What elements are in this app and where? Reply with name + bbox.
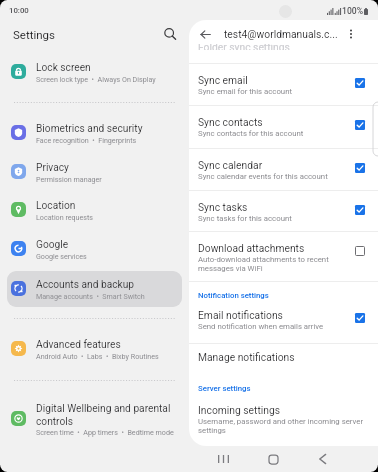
staticText: Advanced features [36, 339, 121, 351]
button[interactable]: Download attachments [189, 239, 378, 277]
button[interactable]: Sync email [189, 71, 378, 101]
button[interactable]: Lock screen [7, 54, 182, 90]
staticText: Server settings [198, 384, 251, 393]
staticText: Sync tasks for this account [198, 214, 292, 223]
button[interactable]: Digital Wellbeing and parental controls [7, 397, 182, 441]
staticText: Settings [13, 28, 55, 41]
button[interactable]: Sync tasks [189, 198, 378, 228]
staticText: Username, password and other incoming se… [198, 417, 368, 435]
staticText: Permission manager [36, 175, 102, 183]
staticText: Face recognition • Fingerprints [36, 136, 137, 144]
staticText: Manage notifications [198, 351, 295, 363]
staticText: Email notifications [198, 309, 283, 321]
staticText: 10:00 [9, 6, 29, 15]
button[interactable]: More options [340, 23, 362, 45]
staticText: Download attachments [198, 242, 305, 254]
staticText: Sync tasks [198, 201, 248, 213]
staticText: Sync email for this account [198, 87, 293, 96]
button[interactable]: Back [195, 24, 215, 44]
button[interactable]: Manage notifications [189, 344, 378, 372]
staticText: Google services [36, 252, 87, 260]
button[interactable]: Search [160, 24, 180, 44]
button[interactable]: Recent apps [210, 446, 236, 472]
button[interactable]: Location [7, 192, 182, 228]
staticText: Google [36, 239, 69, 251]
staticText: Screen lock type • Always On Display [36, 75, 156, 83]
button[interactable]: Advanced features [7, 331, 182, 367]
staticText: Folder sync settings [198, 44, 290, 50]
staticText: Screen time • App timers • Bedtime mode [36, 428, 174, 436]
staticText: 100% [342, 6, 363, 16]
staticText: Biometrics and security [36, 123, 143, 135]
button[interactable]: Accounts and backup [7, 271, 182, 307]
staticText: Manage accounts • Smart Switch [36, 292, 145, 300]
staticText: Accounts and backup [36, 279, 135, 291]
staticText: Location [36, 200, 76, 212]
staticText: Send notification when emails arrive [198, 322, 324, 331]
button[interactable]: Sync contacts [189, 113, 378, 143]
staticText: Sync calendar events for this account [198, 172, 328, 181]
staticText: test4@worldmanuals.c... [224, 28, 338, 40]
button[interactable]: Back [309, 446, 335, 472]
staticText: Auto-download attachments to recent mess… [198, 255, 350, 273]
button[interactable]: Home [260, 446, 286, 472]
button[interactable]: Google [7, 231, 182, 267]
staticText: Android Auto • Labs • Bixby Routines [36, 352, 159, 360]
button[interactable]: Incoming settings [189, 401, 378, 439]
button[interactable]: Sync calendar [189, 156, 378, 186]
staticText: Lock screen [36, 62, 91, 74]
button[interactable]: Privacy [7, 154, 182, 190]
staticText: Incoming settings [198, 404, 281, 416]
staticText: Sync calendar [198, 159, 263, 171]
staticText: Location requests [36, 213, 94, 221]
button[interactable]: Email notifications [189, 306, 378, 336]
staticText: Sync email [198, 74, 248, 86]
staticText: Sync contacts for this account [198, 129, 304, 138]
button[interactable]: Biometrics and security [7, 115, 182, 151]
staticText: Notification settings [198, 291, 269, 300]
staticText: Privacy [36, 162, 69, 174]
staticText: Sync contacts [198, 116, 263, 128]
staticText: Digital Wellbeing and parental controls [36, 403, 179, 427]
